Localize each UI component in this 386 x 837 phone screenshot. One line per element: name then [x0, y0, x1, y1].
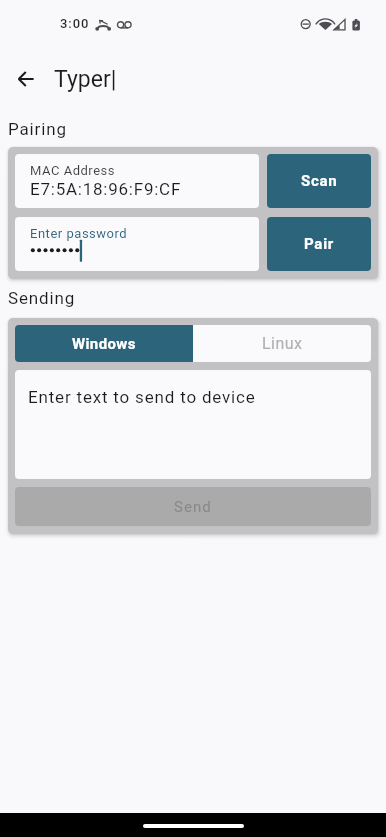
staticText: Pairing: [8, 119, 67, 139]
button[interactable]: Pair: [267, 217, 371, 271]
button[interactable]: MAC Address: [15, 154, 259, 208]
staticText: 3:00: [60, 16, 90, 31]
staticText: Sending: [8, 288, 76, 308]
staticText: Pair: [304, 235, 335, 253]
staticText: Typer|: [54, 66, 117, 93]
button[interactable]: Scan: [267, 154, 371, 208]
staticText: Send: [174, 498, 212, 516]
staticText: E7:5A:18:96:F9:CF: [30, 179, 182, 199]
button[interactable]: Enter password: [15, 217, 259, 271]
button[interactable]: Back: [5, 57, 48, 100]
staticText: Windows: [72, 335, 136, 353]
button[interactable]: Linux: [193, 325, 371, 362]
staticText: Linux: [262, 334, 303, 353]
staticText: Enter password: [30, 226, 128, 241]
staticText: Enter text to send to device: [28, 387, 256, 407]
button[interactable]: Enter text to send to device: [15, 370, 371, 479]
staticText: MAC Address: [30, 163, 116, 178]
staticText: Scan: [301, 172, 338, 190]
button[interactable]: Windows: [15, 325, 193, 362]
